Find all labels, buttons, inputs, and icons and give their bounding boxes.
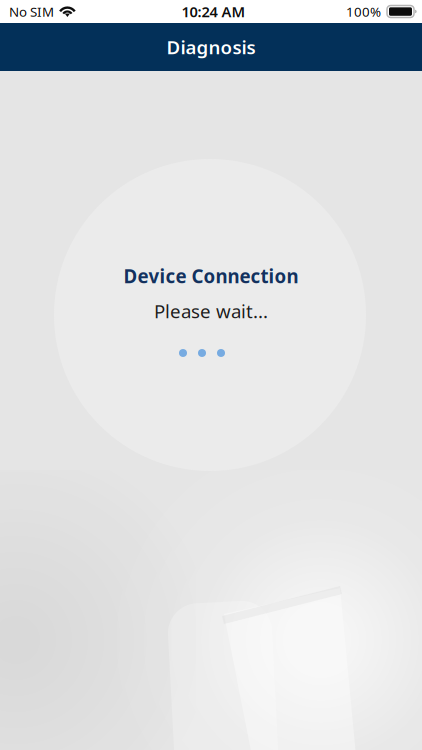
staticText: Diagnosis [166,35,255,59]
staticText: Device Connection [123,264,298,288]
staticText: 100% [346,3,381,20]
staticText: 10:24 AM [181,2,245,21]
staticText: Please wait... [154,299,268,323]
staticText: No SIM [9,3,54,20]
